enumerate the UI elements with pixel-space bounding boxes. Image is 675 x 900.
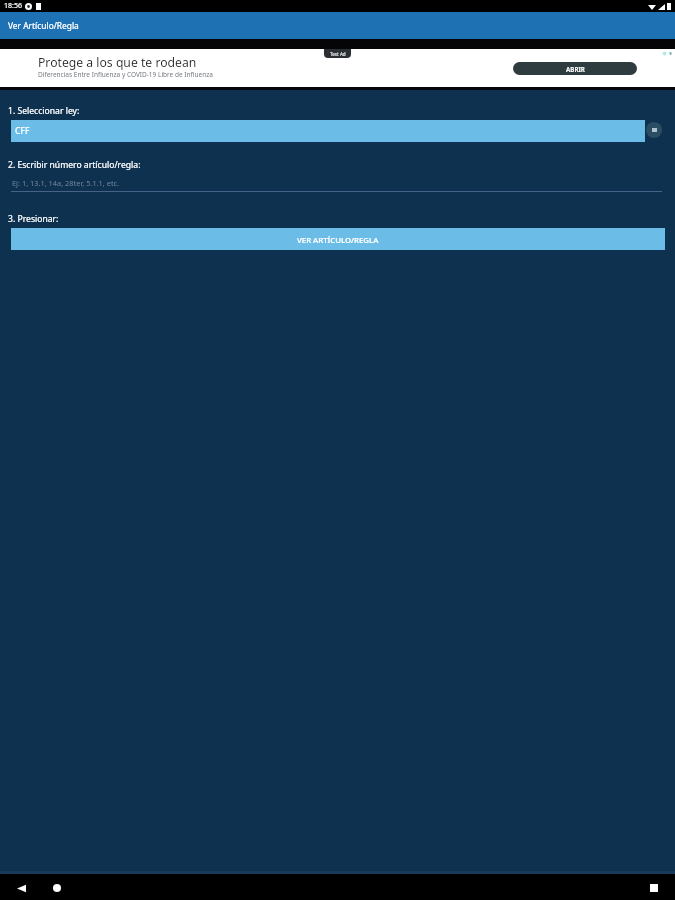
button[interactable]: Back [3, 875, 39, 900]
staticText: Test Ad [330, 51, 346, 57]
staticText: Ej: 1, 13.1, 14a, 28ter, 5.1.1, etc. [12, 178, 120, 188]
button[interactable]: Recent apps [636, 875, 672, 900]
staticText: Diferencias Entre Influenza y COVID-19 L… [38, 70, 213, 79]
staticText: Ver Artículo/Regla [8, 20, 79, 31]
staticText: 18:56 [4, 1, 22, 11]
staticText: VER ARTÍCULO/REGLA [297, 235, 379, 246]
staticText: 1. Seleccionar ley: [8, 105, 80, 117]
button[interactable]: CFF [11, 120, 645, 142]
staticText: 3. Presionar: [8, 213, 59, 225]
button[interactable]: Home [39, 875, 75, 900]
button[interactable]: VER ARTÍCULO/REGLA [11, 228, 665, 250]
button[interactable]: ABRIR [513, 62, 637, 75]
staticText: ABRIR [566, 65, 585, 73]
other: AdChoices [662, 50, 673, 57]
button[interactable]: Desplegar lista [646, 122, 662, 138]
staticText: Protege a los que te rodean [38, 54, 197, 71]
staticText: CFF [15, 125, 30, 137]
staticText: 2. Escribir número artículo/regla: [8, 159, 141, 171]
